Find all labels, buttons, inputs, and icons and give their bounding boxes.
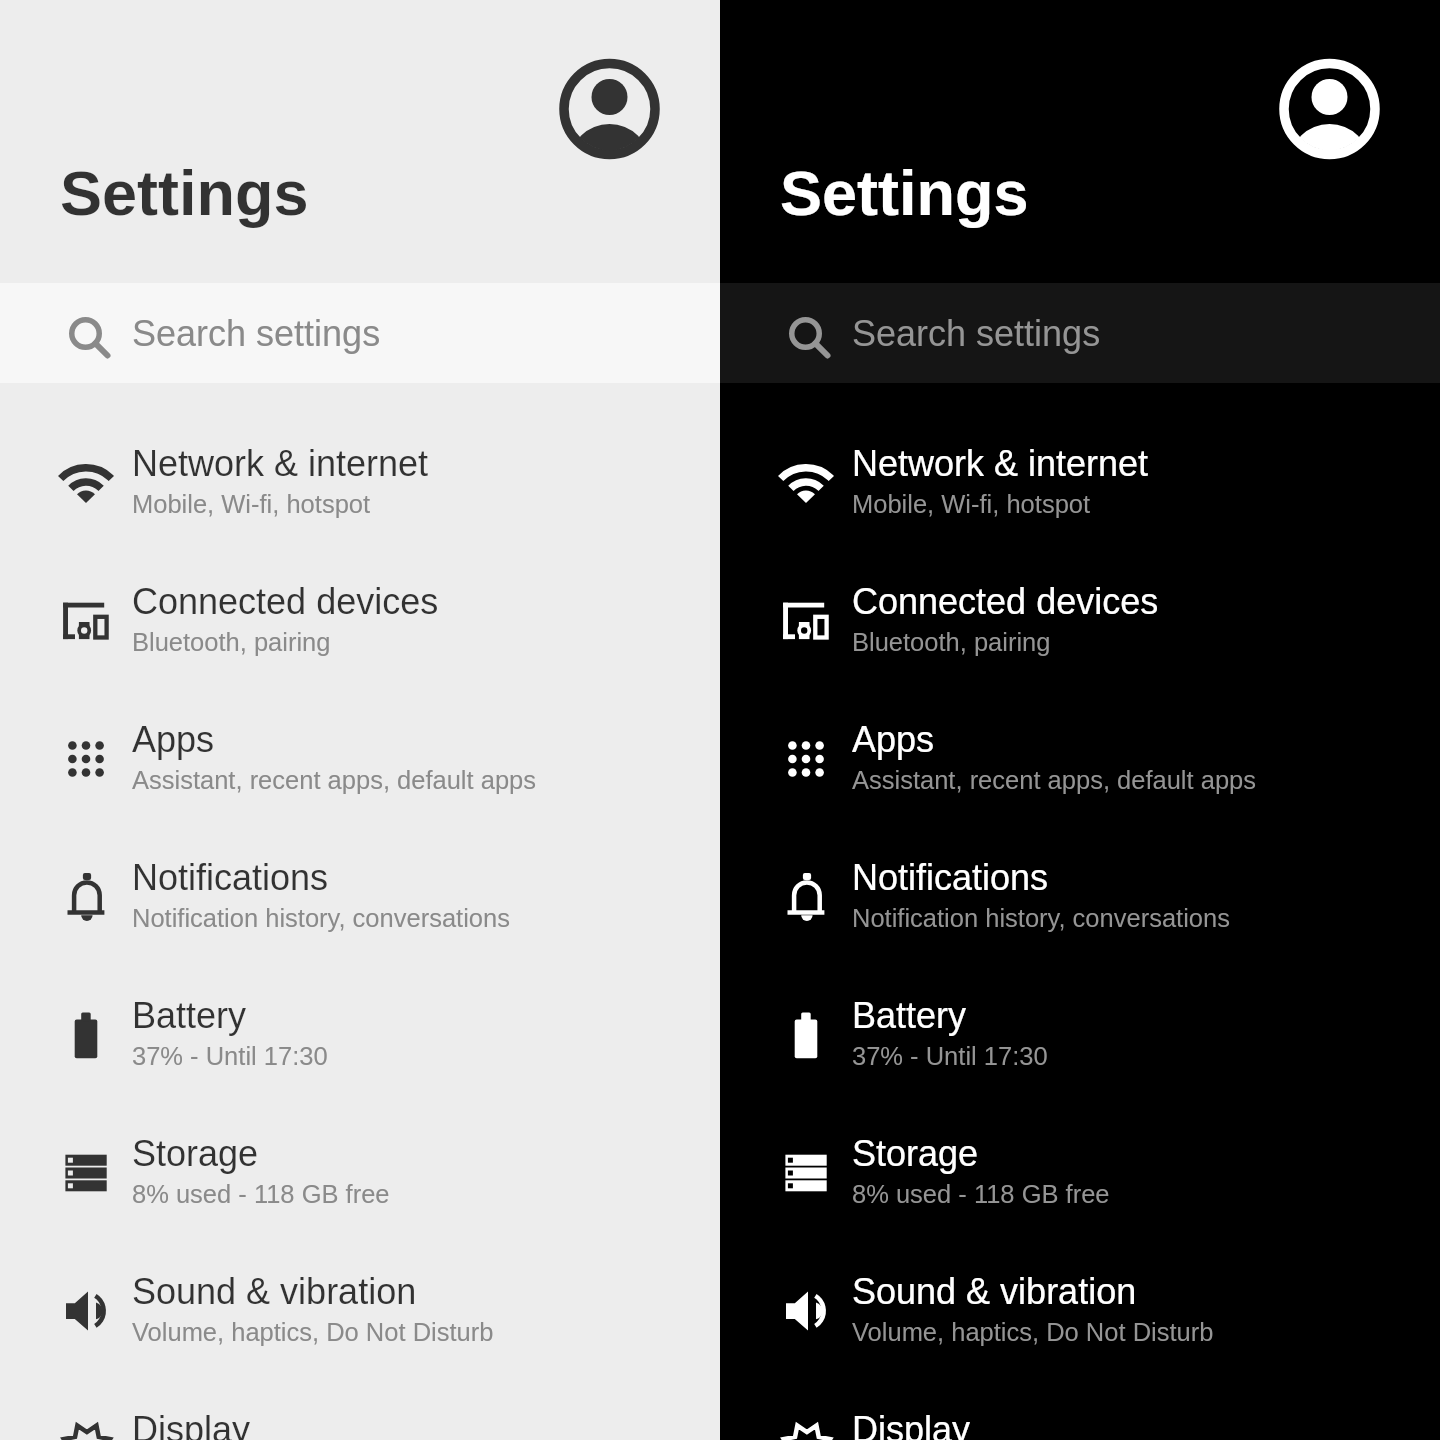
- button[interactable]: Display: [720, 1377, 1440, 1440]
- button[interactable]: Connected devices: [720, 549, 1440, 687]
- staticText: 37% - Until 17:30: [852, 1042, 1048, 1070]
- button[interactable]: Network & internet: [0, 411, 720, 549]
- staticText: Battery: [132, 995, 247, 1035]
- staticText: Sound & vibration: [132, 1271, 417, 1311]
- button[interactable]: Storage: [720, 1101, 1440, 1239]
- staticText: Settings: [60, 158, 309, 228]
- staticText: Sound & vibration: [852, 1271, 1137, 1311]
- button[interactable]: Sound & vibration: [0, 1239, 720, 1377]
- staticText: Notification history, conversations: [132, 904, 510, 932]
- button[interactable]: Storage: [0, 1101, 720, 1239]
- button[interactable]: Apps: [0, 687, 720, 825]
- staticText: 8% used - 118 GB free: [852, 1180, 1110, 1208]
- staticText: Mobile, Wi-fi, hotspot: [132, 490, 371, 518]
- button[interactable]: Apps: [720, 687, 1440, 825]
- staticText: Volume, haptics, Do Not Disturb: [852, 1318, 1214, 1346]
- staticText: Storage: [852, 1133, 979, 1173]
- button[interactable]: Battery: [720, 963, 1440, 1101]
- staticText: Search settings: [852, 313, 1101, 353]
- staticText: Notifications: [852, 857, 1049, 897]
- button[interactable]: Notifications: [0, 825, 720, 963]
- staticText: Settings: [780, 158, 1029, 228]
- staticText: 8% used - 118 GB free: [132, 1180, 390, 1208]
- staticText: Assistant, recent apps, default apps: [132, 766, 536, 794]
- button[interactable]: Display: [0, 1377, 720, 1440]
- button[interactable]: Search settings: [720, 283, 1440, 383]
- button[interactable]: Notifications: [720, 825, 1440, 963]
- staticText: Apps: [132, 719, 215, 759]
- button[interactable]: Battery: [0, 963, 720, 1101]
- staticText: 37% - Until 17:30: [132, 1042, 328, 1070]
- button[interactable]: Sound & vibration: [720, 1239, 1440, 1377]
- staticText: Display: [852, 1409, 971, 1440]
- staticText: Search settings: [132, 313, 381, 353]
- button[interactable]: Search settings: [0, 283, 720, 383]
- staticText: Notification history, conversations: [852, 904, 1230, 932]
- button[interactable]: Network & internet: [720, 411, 1440, 549]
- staticText: Apps: [852, 719, 935, 759]
- staticText: Bluetooth, pairing: [852, 628, 1051, 656]
- staticText: Mobile, Wi-fi, hotspot: [852, 490, 1091, 518]
- staticText: Volume, haptics, Do Not Disturb: [132, 1318, 494, 1346]
- staticText: Storage: [132, 1133, 259, 1173]
- staticText: Battery: [852, 995, 967, 1035]
- staticText: Connected devices: [852, 581, 1159, 621]
- button[interactable]: Connected devices: [0, 549, 720, 687]
- staticText: Notifications: [132, 857, 329, 897]
- staticText: Network & internet: [132, 443, 429, 483]
- staticText: Assistant, recent apps, default apps: [852, 766, 1256, 794]
- staticText: Bluetooth, pairing: [132, 628, 331, 656]
- button[interactable]: [559, 59, 660, 160]
- staticText: Connected devices: [132, 581, 439, 621]
- staticText: Network & internet: [852, 443, 1149, 483]
- button[interactable]: [1279, 59, 1380, 160]
- staticText: Display: [132, 1409, 251, 1440]
